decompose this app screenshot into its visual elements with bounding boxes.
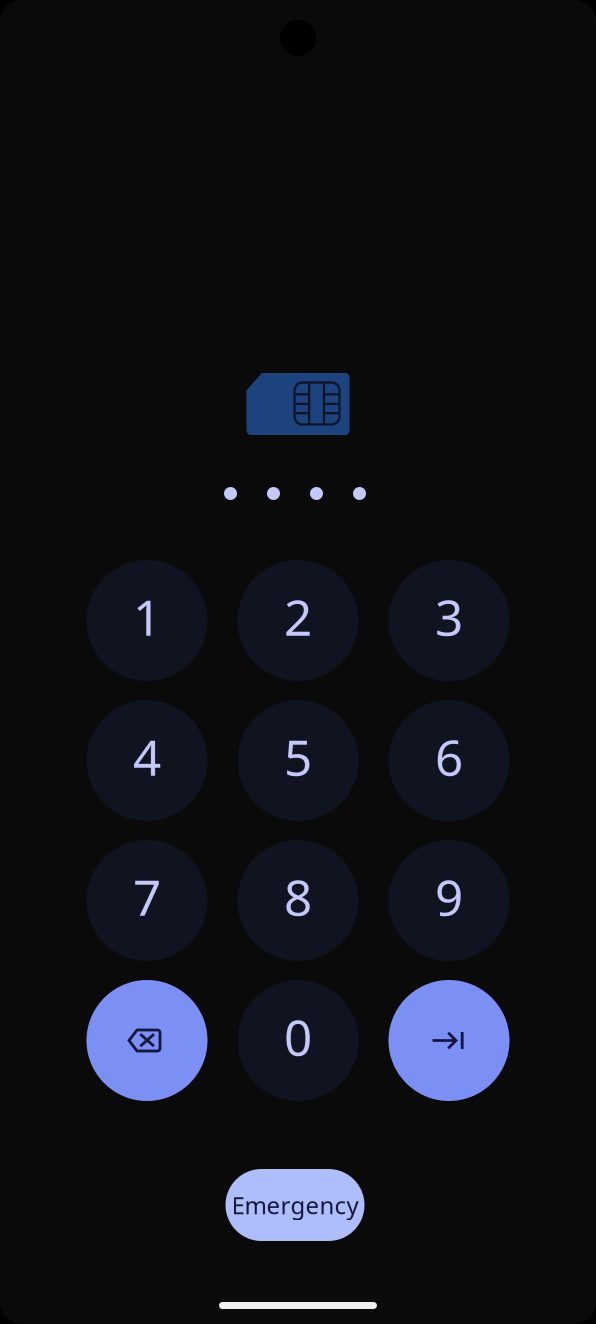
staticText: 7	[133, 864, 161, 929]
button[interactable]: 6	[388, 700, 509, 821]
button[interactable]: 4	[86, 700, 207, 821]
staticText: 9	[435, 864, 463, 929]
button[interactable]: 2	[237, 560, 358, 681]
staticText: Emergency	[231, 1189, 358, 1221]
staticText: 1	[133, 584, 161, 649]
staticText: 2	[284, 584, 312, 649]
button[interactable]: 0	[237, 980, 358, 1101]
staticText: 8	[284, 864, 312, 929]
button[interactable]: 9	[388, 840, 509, 961]
staticText: 6	[435, 724, 463, 789]
button[interactable]: 3	[388, 560, 509, 681]
button[interactable]: Enter	[388, 980, 509, 1101]
button[interactable]: 7	[86, 840, 207, 961]
staticText: 3	[435, 584, 463, 649]
button[interactable]: Emergency	[225, 1169, 364, 1241]
staticText: 5	[284, 724, 312, 789]
staticText: 0	[284, 1004, 312, 1069]
button[interactable]: 5	[237, 700, 358, 821]
button[interactable]: 8	[237, 840, 358, 961]
staticText: 4	[133, 724, 161, 789]
button[interactable]: Delete	[86, 980, 207, 1101]
button[interactable]: 1	[86, 560, 207, 681]
